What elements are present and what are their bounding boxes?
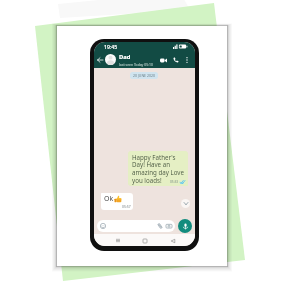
staticText: Dad bbox=[119, 53, 131, 61]
button[interactable]: Record voice message bbox=[178, 219, 192, 233]
staticText: last seen Today 05:10 bbox=[119, 62, 153, 67]
button[interactable]: Back bbox=[168, 236, 177, 245]
button[interactable]: Video call bbox=[157, 54, 169, 66]
staticText: 19:45 bbox=[104, 43, 118, 50]
button[interactable]: Back bbox=[95, 55, 105, 65]
button[interactable]: Recent apps bbox=[113, 236, 122, 245]
staticText: Ok bbox=[104, 194, 114, 204]
button[interactable]: Home bbox=[140, 236, 149, 245]
staticText: 05:33 bbox=[170, 180, 179, 184]
button[interactable]: Scroll to bottom bbox=[181, 199, 190, 208]
button[interactable]: Ok bbox=[101, 193, 133, 210]
staticText: Happy Father's Day! Have an amazing day … bbox=[132, 153, 185, 185]
button[interactable] bbox=[97, 220, 175, 232]
staticText: 05:57 bbox=[122, 204, 131, 209]
button[interactable]: More options bbox=[182, 55, 192, 65]
button[interactable]: Call bbox=[169, 53, 182, 66]
staticText: 20 JUNE 2020 bbox=[133, 73, 155, 78]
button[interactable]: Happy Father's Day! Have an amazing day … bbox=[128, 151, 188, 186]
